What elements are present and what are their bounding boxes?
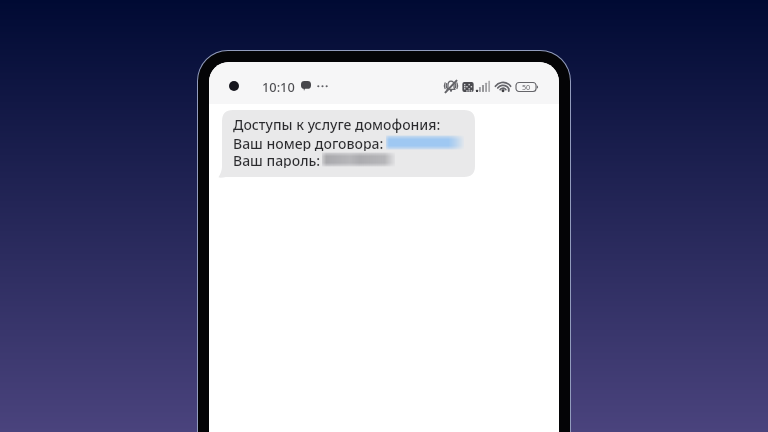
button[interactable]: Status icons [443, 80, 540, 93]
staticText: Доступы к услуге домофония: [233, 115, 441, 134]
staticText: 50 [522, 82, 531, 92]
staticText: 10:10 [262, 78, 295, 95]
button[interactable]: Доступы к услуге домофония: [233, 115, 464, 168]
staticText: Ваш пароль: [233, 151, 321, 168]
staticText: Ваш номер договора: [233, 134, 384, 151]
